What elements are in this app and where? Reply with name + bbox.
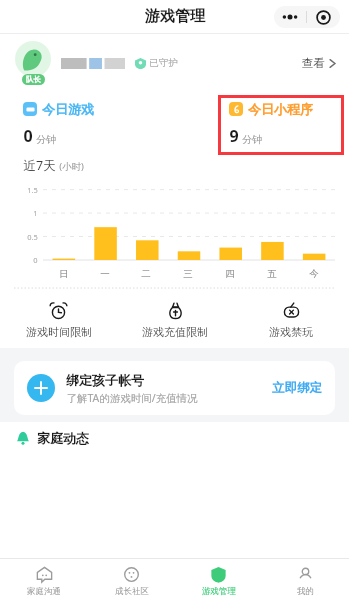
button[interactable]: Close mini program [307,6,340,28]
staticText: 游戏管理 [145,7,205,26]
button[interactable]: 游戏时间限制 [0,292,117,348]
staticText: 0 [33,255,38,265]
staticText: 今 [309,268,319,280]
staticText: 近7天 [23,157,56,174]
staticText: 已守护 [149,57,178,69]
button[interactable]: 游戏充值限制 [117,292,233,348]
staticText: 游戏时间限制 [26,325,92,339]
button[interactable]: 队长 [0,34,349,91]
staticText: 分钟 [242,133,262,146]
staticText: 一 [100,268,110,280]
staticText: 0 [23,125,33,147]
staticText: 家庭沟通 [27,586,61,597]
staticText: 游戏充值限制 [142,325,208,339]
staticText: 查看 [302,56,325,70]
staticText: 队长 [26,75,41,84]
staticText: 1.5 [27,185,38,195]
staticText: 二 [141,268,151,280]
staticText: (小时) [59,160,84,173]
staticText: 家庭动态 [37,430,89,446]
staticText: 五 [267,268,277,280]
staticText: 四 [225,268,235,280]
staticText: 游戏禁玩 [269,325,313,339]
button[interactable]: 家庭沟通 [0,559,88,604]
staticText: 1 [33,208,38,218]
button[interactable]: More options [274,6,306,28]
staticText: 了解TA的游戏时间/充值情况 [66,391,198,405]
staticText: 三 [183,268,193,280]
button[interactable]: 绑定孩子帐号 [14,361,335,415]
staticText: 今日小程序 [248,101,313,117]
staticText: 0.5 [27,232,38,242]
button[interactable]: 游戏禁玩 [233,292,349,348]
staticText: 今日游戏 [42,101,94,117]
staticText: 立即绑定 [272,380,322,396]
staticText: 成长社区 [115,586,149,597]
staticText: 绑定孩子帐号 [66,372,144,388]
button[interactable]: 我的 [262,559,349,604]
button[interactable]: 成长社区 [88,559,175,604]
button[interactable]: 游戏管理 [175,559,262,604]
staticText: 我的 [297,586,314,597]
button[interactable]: 今日小程序 [229,91,349,157]
button[interactable]: 立即绑定 [272,380,322,396]
staticText: 游戏管理 [202,586,236,597]
button[interactable]: 查看 [302,56,336,70]
staticText: 分钟 [36,133,56,146]
button[interactable]: 今日游戏 [23,91,174,157]
staticText: 9 [229,125,239,147]
staticText: 日 [59,268,69,280]
